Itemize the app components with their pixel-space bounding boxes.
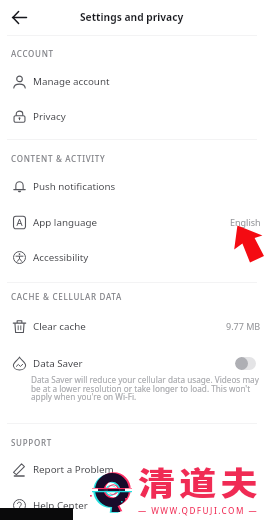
staticText: Data Saver [33,357,83,370]
staticText: Report a Problem [33,463,114,476]
staticText: ACCOUNT [11,48,54,59]
button[interactable]: Clear cache [0,308,270,344]
staticText: CACHE & CELLULAR DATA [11,291,122,302]
staticText: Settings and privacy [80,10,184,24]
staticText: SUPPORT [11,437,52,448]
staticText: Clear cache [33,320,86,333]
staticText: Accessibility [33,251,89,264]
button[interactable]: Data Saver [0,345,270,409]
staticText: Privacy [33,110,66,123]
button[interactable]: Help Center [0,487,270,520]
button[interactable]: App language [0,204,270,240]
staticText: — WWW.QDFUJI.COM — [138,505,259,516]
button[interactable]: Report a Problem [0,451,270,487]
staticText: Push notifications [33,180,116,193]
staticText: App language [33,216,98,229]
staticText: English [230,216,261,228]
button[interactable]: Privacy [0,98,270,134]
staticText: Manage account [33,75,110,88]
staticText: Help Center [33,499,88,512]
staticText: 清道夫 [138,458,262,504]
button[interactable]: Accessibility [0,239,270,275]
staticText: 9.77 MB [226,320,261,332]
staticText: Data Saver will reduce your cellular dat… [31,374,270,402]
button[interactable]: Push notifications [0,168,270,204]
button[interactable]: Manage account [0,63,270,99]
staticText: CONTENT & ACTIVITY [11,153,106,164]
button[interactable]: Back [6,4,32,30]
